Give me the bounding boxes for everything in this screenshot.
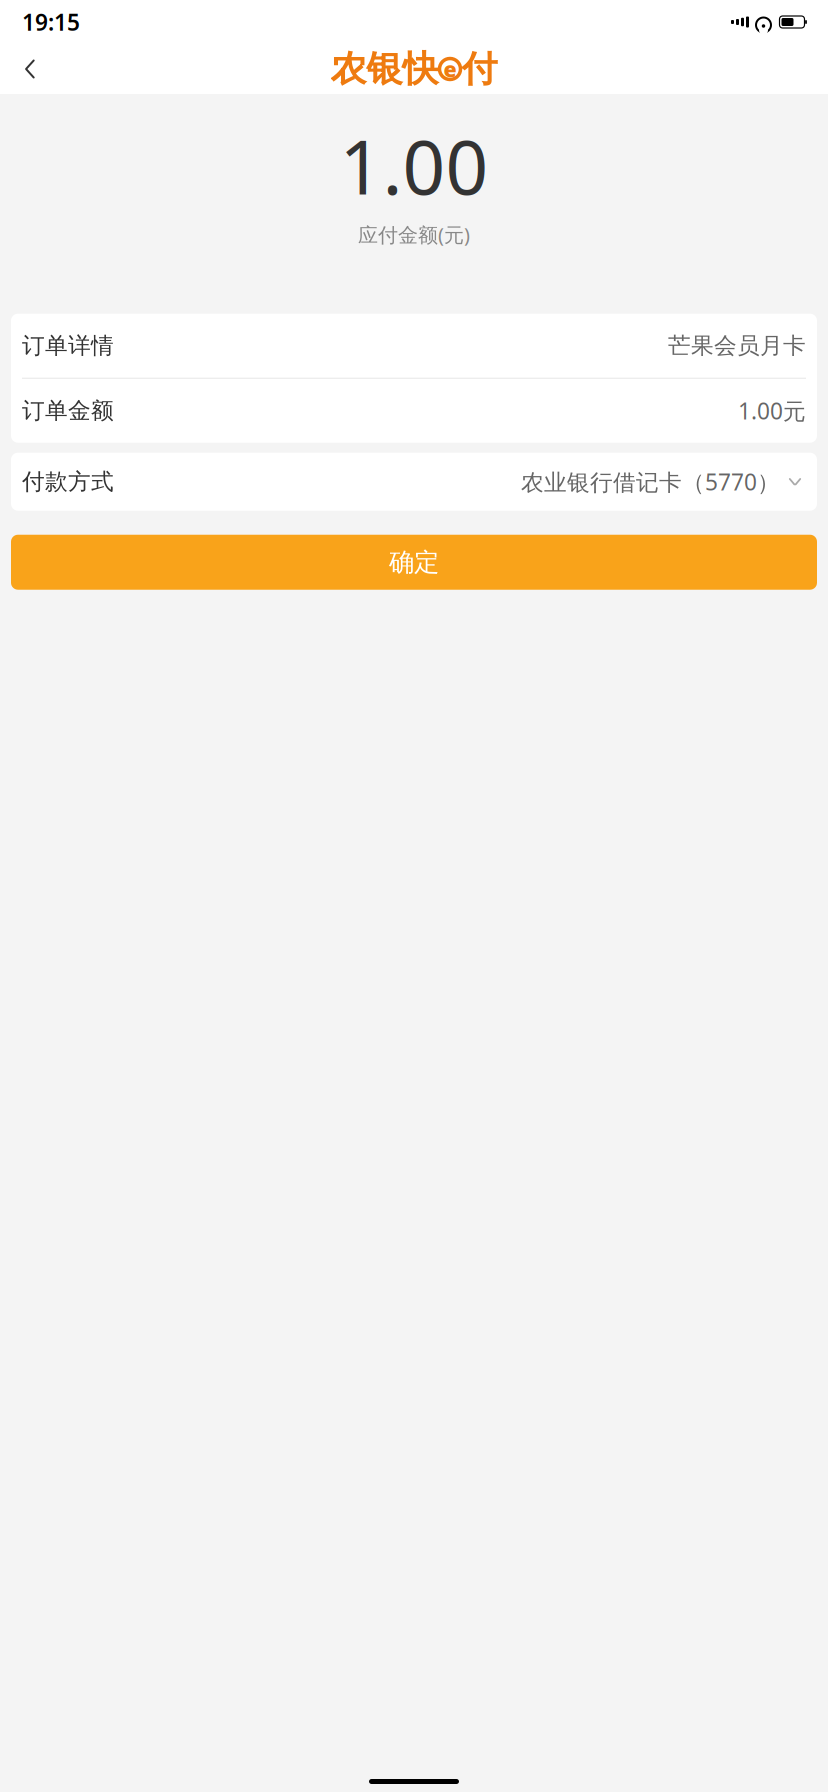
staticText: 应付金额(元) <box>358 221 470 248</box>
staticText: 1.00 <box>339 116 488 215</box>
staticText: 确定 <box>389 547 439 578</box>
staticText: 农业银行借记卡（5770） <box>521 467 780 497</box>
button[interactable]: 付款方式 <box>0 453 828 511</box>
staticText: 农银快 <box>330 47 438 91</box>
staticText: e <box>443 55 456 83</box>
staticText: 芒果会员月卡 <box>668 332 806 360</box>
button[interactable]: 确定 <box>0 535 828 590</box>
staticText: 订单金额 <box>22 397 114 425</box>
staticText: 订单详情 <box>22 332 114 360</box>
staticText: 1.00元 <box>738 396 806 426</box>
staticText: 付 <box>461 47 497 91</box>
staticText: 付款方式 <box>22 468 114 496</box>
staticText: 19:15 <box>22 7 80 37</box>
button[interactable]: Back <box>8 47 52 91</box>
